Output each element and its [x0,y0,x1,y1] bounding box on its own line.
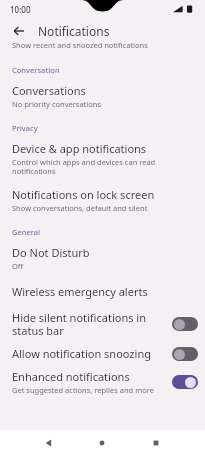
staticText: Show recent and snoozed notifications [12,40,148,50]
button[interactable]: Do Not Disturb [0,245,205,271]
staticText: Conversations [12,83,86,98]
staticText: Device & app notifications [12,141,147,156]
staticText: Control which apps and devices can read … [12,157,193,176]
staticText: Hide silent notifications in status bar [12,310,166,338]
staticText: Privacy [12,123,38,133]
button[interactable]: Recent apps [145,432,167,454]
staticText: General [12,227,41,237]
staticText: 10:00 [10,4,31,15]
staticText: Get suggested actions, replies and more [12,385,154,395]
button[interactable]: Device & app notifications [0,141,205,176]
button[interactable]: Hide silent notifications in status bar [0,310,205,338]
button[interactable]: Notifications on lock screen [0,187,205,213]
button[interactable]: Home [91,432,113,454]
staticText: Enhanced notifications [12,369,130,384]
staticText: Allow notification snoozing [12,346,151,361]
staticText: Show conversations, default and silent [12,203,148,213]
staticText: Wireless emergency alerts [12,284,148,299]
button[interactable]: Allow notification snoozing [0,346,205,361]
button[interactable]: Back [6,18,32,44]
button[interactable]: Enhanced notifications [0,369,205,395]
button[interactable]: Wireless emergency alerts [0,284,205,299]
staticText: Notifications [38,23,110,39]
staticText: Off [12,261,24,271]
staticText: Do Not Disturb [12,245,90,260]
button[interactable]: Conversations [0,83,205,109]
staticText: No priority conversations [12,99,102,109]
staticText: Notifications on lock screen [12,187,155,202]
button[interactable]: Back [38,432,60,454]
staticText: Conversation [12,65,60,75]
